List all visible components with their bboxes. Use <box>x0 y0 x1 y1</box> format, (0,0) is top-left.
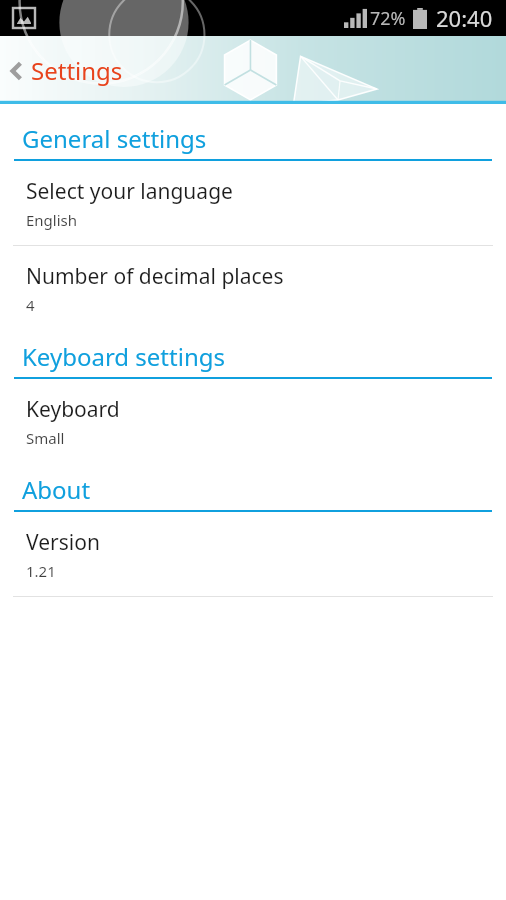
staticText: Keyboard <box>26 395 120 424</box>
button[interactable]: Number of decimal places <box>0 246 506 330</box>
other: Back <box>9 58 24 84</box>
staticText: Version <box>26 528 100 557</box>
staticText: 1.21 <box>26 561 56 581</box>
staticText: English <box>26 210 78 230</box>
staticText: Select your language <box>26 177 233 206</box>
button[interactable]: Select your language <box>0 161 506 245</box>
staticText: 20:40 <box>436 3 493 33</box>
staticText: Small <box>26 428 65 448</box>
staticText: Number of decimal places <box>26 262 284 291</box>
staticText: About <box>22 473 91 506</box>
staticText: 72% <box>370 6 406 31</box>
other: Image notification <box>13 8 35 28</box>
staticText: Keyboard settings <box>22 340 225 373</box>
button[interactable]: Version <box>0 512 506 596</box>
staticText: Settings <box>31 54 123 87</box>
button[interactable]: Back <box>0 47 143 94</box>
staticText: 4 <box>26 295 35 315</box>
staticText: General settings <box>22 122 207 155</box>
button[interactable]: Keyboard <box>0 379 506 463</box>
